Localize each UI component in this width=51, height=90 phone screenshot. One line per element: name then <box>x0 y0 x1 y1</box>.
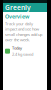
staticText: Track your daily impact and see how smal… <box>5 21 42 42</box>
staticText: Greenly <box>5 3 31 12</box>
staticText: Today <box>12 45 22 51</box>
staticText: 2.4 kg saved <box>12 52 33 57</box>
button[interactable]: Greenly <box>3 3 47 12</box>
staticText: Overview <box>5 13 29 20</box>
